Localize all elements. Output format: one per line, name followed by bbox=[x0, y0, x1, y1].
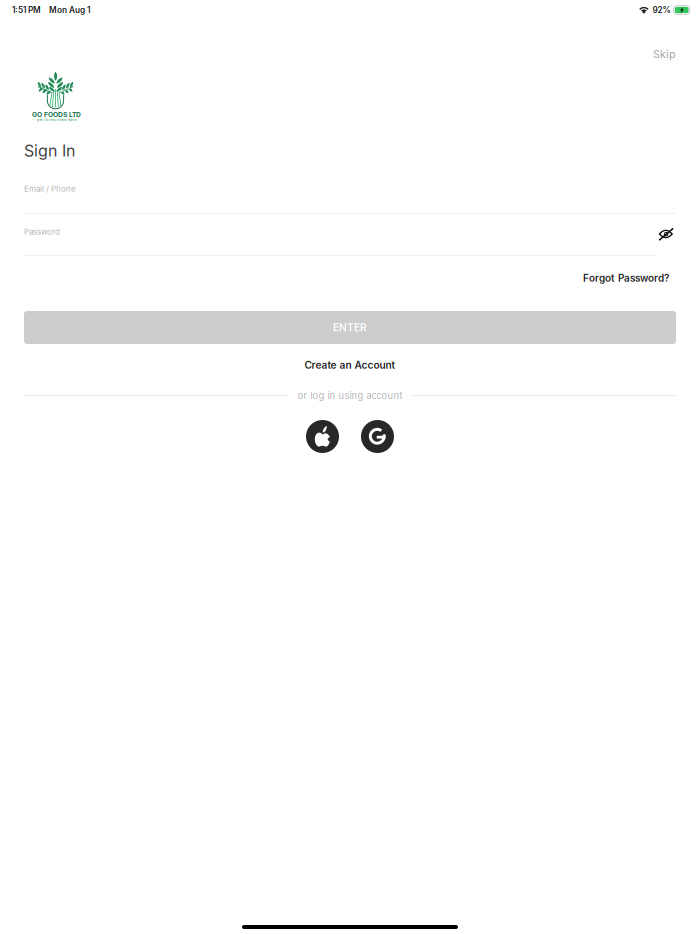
button[interactable]: Email / Phone bbox=[24, 184, 676, 214]
staticText: grown, cultivated, processed, exported bbox=[37, 118, 76, 121]
staticText: Skip bbox=[653, 47, 676, 60]
staticText: 1:51 PM bbox=[12, 5, 41, 15]
staticText: Forgot Password? bbox=[583, 272, 669, 284]
staticText: Password bbox=[24, 227, 60, 237]
button[interactable]: Forgot Password? bbox=[559, 268, 669, 288]
staticText: Sign In bbox=[24, 141, 75, 160]
button[interactable]: Sign in with Google bbox=[361, 420, 394, 453]
staticText: GO FOODS LTD bbox=[32, 110, 81, 119]
staticText: 92% bbox=[653, 5, 671, 15]
button[interactable]: Show password bbox=[649, 219, 683, 249]
button[interactable]: Password bbox=[24, 227, 656, 256]
staticText: Email / Phone bbox=[24, 184, 76, 194]
staticText: ENTER bbox=[333, 321, 367, 334]
button[interactable]: Sign in with Apple bbox=[306, 420, 339, 453]
staticText: Create an Account bbox=[304, 359, 395, 371]
button[interactable]: Skip bbox=[632, 43, 676, 65]
staticText: or log in using account bbox=[297, 390, 402, 401]
staticText: Mon Aug 1 bbox=[49, 5, 90, 15]
button[interactable]: ENTER bbox=[24, 311, 676, 344]
button[interactable]: Create an Account bbox=[260, 355, 440, 375]
